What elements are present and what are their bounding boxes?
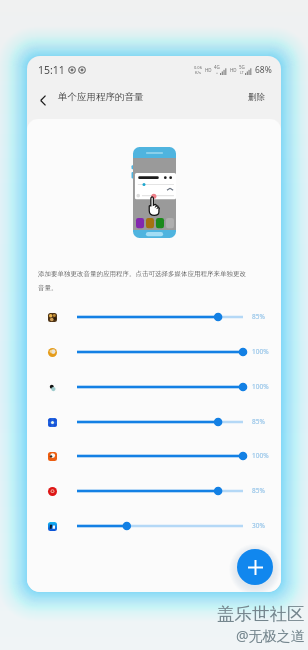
staticText: HD: [230, 67, 237, 73]
button[interactable]: 删除: [246, 90, 267, 105]
staticText: 100%: [252, 382, 269, 391]
button[interactable]: 85%: [27, 413, 281, 431]
button[interactable]: Add: [237, 549, 273, 585]
button[interactable]: 100%: [27, 447, 281, 465]
button[interactable]: 30%: [27, 517, 281, 535]
staticText: 100%: [252, 347, 269, 356]
staticText: 单个应用程序的音量: [58, 91, 144, 103]
staticText: 删除: [248, 92, 265, 103]
button[interactable]: 100%: [27, 378, 281, 396]
staticText: 100%: [252, 451, 269, 460]
staticText: 30%: [252, 521, 265, 530]
staticText: 68%: [255, 64, 272, 76]
staticText: 15:11: [38, 63, 65, 77]
staticText: 85%: [252, 312, 265, 321]
staticText: 0.06: [194, 65, 202, 70]
staticText: 5G: [239, 64, 245, 70]
staticText: +: [216, 70, 219, 75]
staticText: @无极之道: [236, 626, 305, 645]
button[interactable]: 100%: [27, 343, 281, 361]
staticText: LT: [240, 70, 244, 75]
button[interactable]: Back: [34, 91, 52, 109]
button[interactable]: 85%: [27, 308, 281, 326]
staticText: 85%: [252, 417, 265, 426]
staticText: 盖乐世社区: [217, 603, 305, 625]
staticText: HD: [205, 67, 212, 73]
staticText: 85%: [252, 486, 265, 495]
button[interactable]: 85%: [27, 482, 281, 500]
staticText: 4G: [214, 64, 220, 70]
staticText: 添加要单独更改音量的应用程序。点击可选择多媒体应用程序来单独更改音量。: [38, 270, 247, 292]
staticText: K/s: [195, 70, 201, 75]
